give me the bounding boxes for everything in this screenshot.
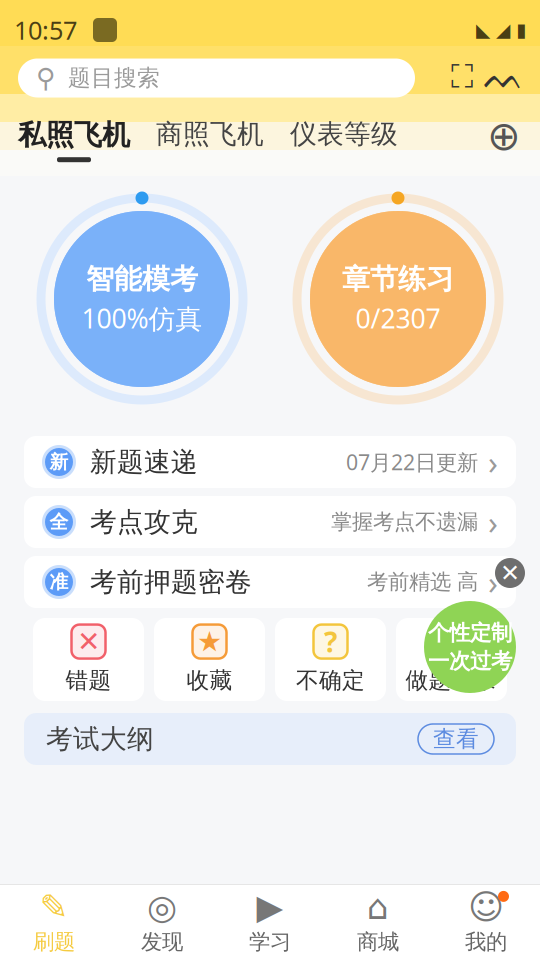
- staticText: 我的: [465, 929, 507, 955]
- staticText: 错题: [65, 667, 111, 694]
- button[interactable]: 章节练习: [292, 193, 504, 405]
- staticText: 10:57: [14, 13, 77, 47]
- staticText: 考前押题密卷: [90, 566, 252, 598]
- staticText: 章节练习: [342, 262, 454, 296]
- staticText: 学习: [249, 929, 291, 955]
- button[interactable]: 客服: [486, 60, 522, 96]
- button[interactable]: 准: [24, 556, 516, 608]
- staticText: 私照飞机: [18, 118, 130, 152]
- staticText: 07月22日更新: [346, 448, 478, 476]
- button[interactable]: 添加科目: [486, 118, 522, 154]
- staticText: 个性定制: [428, 620, 512, 646]
- staticText: ✎: [440, 626, 463, 657]
- staticText: ✕: [77, 626, 100, 657]
- staticText: ⊕: [487, 113, 521, 158]
- staticText: ★: [197, 626, 222, 657]
- staticText: ›: [488, 561, 498, 603]
- button[interactable]: ⌂: [324, 885, 432, 960]
- button[interactable]: 商照飞机: [156, 118, 264, 151]
- staticText: 收藏: [186, 667, 232, 694]
- staticText: 智能模考: [86, 262, 198, 296]
- staticText: 做题记录: [405, 667, 497, 694]
- button[interactable]: ✎: [0, 885, 108, 960]
- staticText: 考点攻克: [90, 506, 198, 538]
- button[interactable]: ✕: [33, 618, 144, 701]
- button[interactable]: 关闭: [495, 558, 525, 588]
- button[interactable]: 私照飞机: [18, 118, 130, 152]
- staticText: 商城: [357, 929, 399, 955]
- staticText: ◣ ◢ ▮: [476, 19, 526, 41]
- staticText: 商照飞机: [156, 118, 264, 151]
- staticText: ›: [488, 501, 498, 543]
- button[interactable]: 全: [24, 496, 516, 548]
- button[interactable]: 扫一扫: [444, 60, 480, 96]
- button[interactable]: 新: [24, 436, 516, 488]
- button[interactable]: 智能模考: [36, 193, 248, 405]
- button[interactable]: ◎: [108, 885, 216, 960]
- button[interactable]: ▶: [216, 885, 324, 960]
- staticText: ✕: [500, 559, 520, 587]
- staticText: 0/2307: [355, 300, 440, 336]
- staticText: ◎: [147, 887, 177, 926]
- staticText: 考前精选 高: [367, 569, 478, 595]
- staticText: 查看: [433, 725, 479, 753]
- button[interactable]: 个性定制 一次过考: [420, 597, 520, 697]
- staticText: 考试大纲: [46, 723, 154, 755]
- staticText: 题目搜索: [68, 64, 160, 92]
- staticText: 新题速递: [90, 446, 198, 478]
- staticText: ?: [324, 623, 337, 660]
- staticText: 100%仿真: [81, 300, 202, 336]
- staticText: ›: [488, 441, 498, 483]
- button[interactable]: ✎: [396, 618, 507, 701]
- staticText: ✎: [39, 887, 68, 926]
- button[interactable]: ?: [275, 618, 386, 701]
- staticText: ⛶: [451, 62, 473, 94]
- staticText: 刷题: [33, 929, 75, 955]
- staticText: 一次过考: [428, 648, 512, 674]
- staticText: 不确定: [296, 667, 365, 694]
- staticText: 全: [49, 510, 68, 533]
- staticText: ⚲: [36, 63, 56, 93]
- staticText: ☺: [468, 887, 504, 926]
- button[interactable]: 考试大纲: [24, 713, 516, 765]
- staticText: 发现: [141, 929, 183, 955]
- staticText: ▶: [256, 887, 283, 926]
- staticText: ᨓ: [483, 61, 524, 95]
- staticText: ⌂: [367, 887, 389, 926]
- button[interactable]: 仪表等级: [290, 118, 398, 151]
- staticText: 仪表等级: [290, 118, 398, 151]
- staticText: 新: [49, 450, 68, 473]
- staticText: 准: [49, 570, 68, 593]
- button[interactable]: ☺: [432, 885, 540, 960]
- button[interactable]: ★: [154, 618, 265, 701]
- staticText: 掌握考点不遗漏: [331, 509, 478, 535]
